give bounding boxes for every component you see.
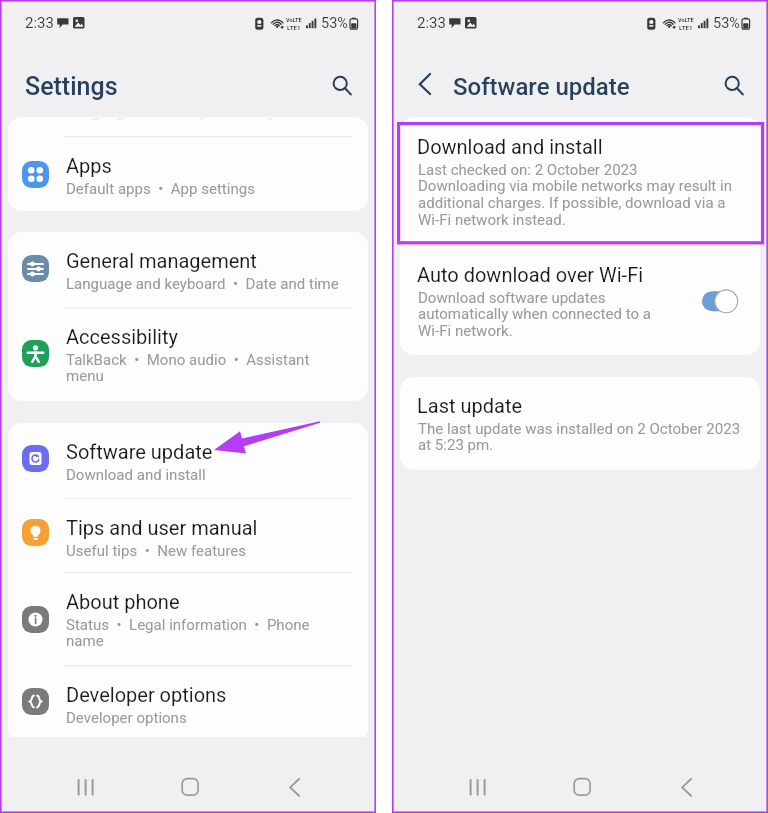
staticText: Last checked on: 2 October 2023 Download… xyxy=(418,161,750,229)
button[interactable]: Recent apps xyxy=(74,775,98,799)
button[interactable]: Recent apps xyxy=(466,775,490,799)
staticText: TalkBack • Mono audio • Assistant menu xyxy=(66,351,350,385)
button[interactable]: Home xyxy=(570,775,594,799)
staticText: LTE1 xyxy=(287,24,301,31)
staticText: Useful tips • New features xyxy=(66,542,350,560)
staticText: Language and keyboard • Date and time xyxy=(66,275,350,293)
staticText: Developer options xyxy=(66,683,350,706)
button[interactable]: Tips and user manual xyxy=(8,499,368,573)
staticText: 2:33 xyxy=(25,14,54,32)
staticText: LTE1 xyxy=(679,24,693,31)
staticText: VoLTE xyxy=(286,17,302,24)
staticText: 53% xyxy=(321,15,348,32)
button[interactable]: Back xyxy=(413,71,439,97)
staticText: Status • Legal information • Phone name xyxy=(66,616,350,650)
staticText: Software update xyxy=(66,440,350,463)
button[interactable]: Apps xyxy=(8,137,368,211)
button[interactable]: Accessibility xyxy=(8,308,368,400)
button[interactable]: Auto download over Wi-Fi xyxy=(400,245,760,355)
staticText: Software update xyxy=(453,73,630,101)
button[interactable]: Last update xyxy=(400,377,760,470)
staticText: Last update xyxy=(417,394,523,417)
staticText: Tips and user manual xyxy=(66,516,350,539)
staticText: Download and install xyxy=(66,466,350,484)
button[interactable]: Search xyxy=(719,73,749,103)
staticText: Default apps • App settings xyxy=(66,180,350,198)
staticText: Apps xyxy=(66,154,350,177)
staticText: General management xyxy=(66,249,350,272)
staticText: Download software updates automatically … xyxy=(418,289,668,340)
staticText: About phone xyxy=(66,590,350,613)
button[interactable]: Auto download over Wi-Fi xyxy=(702,289,742,315)
button[interactable]: Download and install xyxy=(400,117,760,245)
button[interactable]: General management xyxy=(8,232,368,308)
button[interactable]: About phone xyxy=(8,573,368,666)
staticText: Developer options xyxy=(66,709,350,727)
staticText: 2:33 xyxy=(417,14,446,32)
staticText: Settings xyxy=(25,72,118,101)
button[interactable]: Developer options xyxy=(8,666,368,742)
staticText: 53% xyxy=(713,15,740,32)
staticText: Download and install xyxy=(417,135,603,158)
button[interactable]: Software update xyxy=(8,423,368,499)
button[interactable]: Back xyxy=(675,775,699,799)
staticText: Accessibility xyxy=(66,325,350,348)
staticText: VoLTE xyxy=(678,17,694,24)
button[interactable]: Search xyxy=(327,73,357,103)
staticText: Auto download over Wi-Fi xyxy=(417,263,644,286)
staticText: Language • Security • Privacy xyxy=(67,117,276,121)
button[interactable]: Back xyxy=(283,775,307,799)
staticText: The last update was installed on 2 Octob… xyxy=(418,420,750,454)
button[interactable]: Home xyxy=(178,775,202,799)
